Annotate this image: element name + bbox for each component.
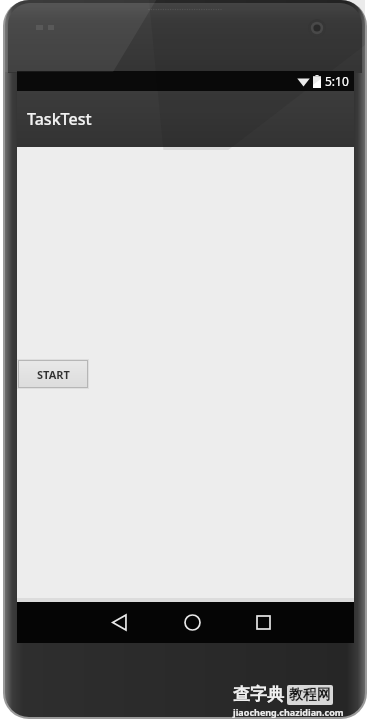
staticText: START bbox=[37, 367, 70, 382]
staticText: jiaocheng.chazidian.com bbox=[233, 706, 344, 718]
button[interactable]: Home bbox=[168, 602, 216, 643]
button[interactable]: Back bbox=[95, 602, 143, 643]
staticText: 5:10 bbox=[325, 73, 349, 89]
staticText: 查字典 bbox=[233, 684, 284, 705]
button[interactable]: START bbox=[18, 360, 88, 388]
button[interactable]: Recent apps bbox=[239, 602, 287, 643]
staticText: 教程网 bbox=[289, 686, 331, 704]
staticText: TaskTest bbox=[27, 108, 92, 130]
